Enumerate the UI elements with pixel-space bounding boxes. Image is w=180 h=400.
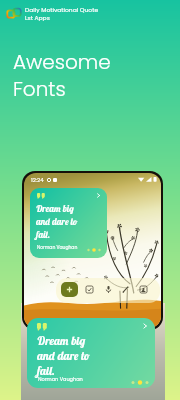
staticText: Daily Motivational Quote bbox=[25, 6, 99, 14]
button[interactable]: Draw bbox=[119, 283, 132, 296]
button[interactable]: Voice bbox=[102, 283, 115, 296]
staticText: Dream big and dare to fail. bbox=[37, 333, 90, 378]
staticText: Dream big and dare to fail. bbox=[36, 203, 78, 240]
button[interactable]: Daily Motivational Quote bbox=[7, 6, 99, 22]
button[interactable]: Checklist bbox=[83, 283, 96, 296]
staticText: Awesome Fonts bbox=[13, 48, 111, 103]
button[interactable]: Image bbox=[137, 283, 150, 296]
staticText: 12:24 bbox=[31, 176, 44, 184]
other: Open quote bbox=[142, 323, 148, 329]
other: Open quote bbox=[96, 193, 101, 198]
button[interactable]: Open quote bbox=[27, 318, 155, 388]
staticText: Lst Apps bbox=[25, 14, 50, 22]
staticText: Norman Vaughan bbox=[37, 244, 78, 250]
staticText: Norman Vaughan bbox=[38, 376, 83, 383]
button[interactable]: Add quote bbox=[61, 282, 78, 297]
button[interactable]: Open quote bbox=[30, 188, 107, 258]
